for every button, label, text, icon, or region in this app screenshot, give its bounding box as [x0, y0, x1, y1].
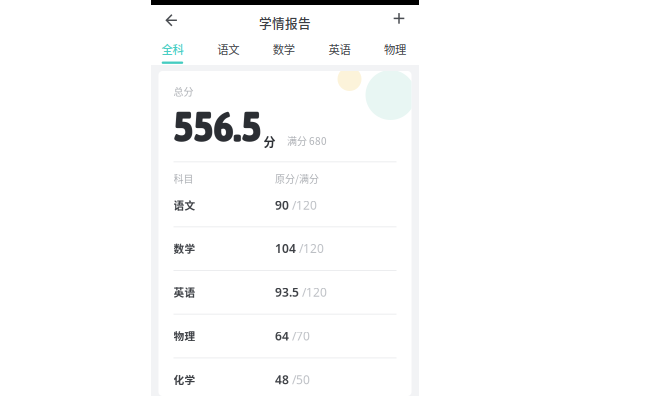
staticText: 语文: [217, 41, 239, 57]
staticText: /120: [296, 240, 324, 256]
button[interactable]: 语文: [217, 35, 240, 65]
staticText: 满分 680: [287, 133, 327, 148]
button[interactable]: Add: [383, 5, 415, 35]
staticText: /70: [289, 328, 310, 344]
staticText: 全科: [161, 41, 183, 57]
button[interactable]: 全科: [161, 35, 184, 65]
staticText: 93.5: [275, 284, 299, 300]
staticText: 104: [275, 240, 296, 256]
staticText: 数学: [273, 41, 295, 57]
staticText: 48: [275, 372, 289, 387]
staticText: 化学: [173, 372, 195, 387]
staticText: 90: [275, 197, 289, 213]
button[interactable]: 英语: [328, 35, 351, 65]
staticText: 556.5: [173, 102, 261, 151]
button[interactable]: 数学: [272, 35, 295, 65]
staticText: 64: [275, 328, 289, 344]
staticText: 语文: [173, 197, 195, 213]
staticText: 英语: [328, 41, 350, 57]
staticText: 物理: [384, 41, 406, 57]
staticText: 数学: [173, 240, 195, 256]
staticText: 物理: [173, 328, 195, 343]
button[interactable]: 物理: [383, 35, 406, 65]
staticText: /120: [289, 197, 317, 213]
staticText: 英语: [173, 284, 195, 300]
staticText: 科目: [173, 171, 193, 186]
button[interactable]: Back: [156, 5, 188, 35]
staticText: 总分: [173, 84, 193, 98]
staticText: 学情报告: [259, 13, 311, 31]
staticText: /50: [289, 372, 310, 387]
staticText: 分: [263, 133, 275, 150]
staticText: /120: [299, 284, 327, 300]
staticText: 原分/满分: [275, 171, 319, 186]
